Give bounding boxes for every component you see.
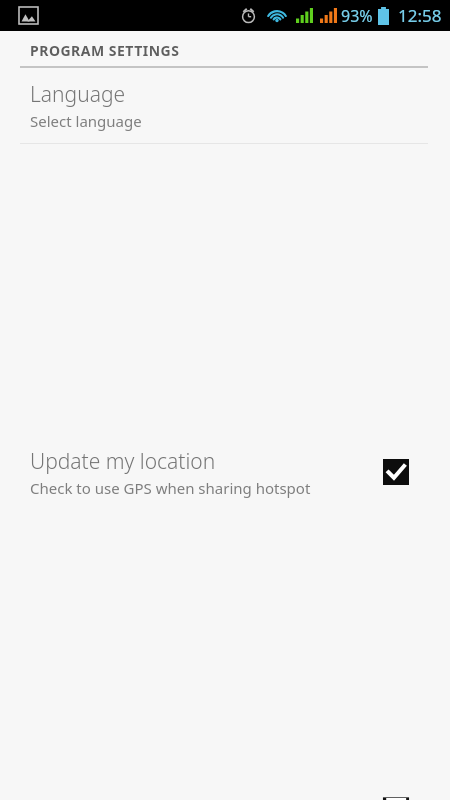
button[interactable]: Toggle Update my location <box>342 144 450 800</box>
staticText: 12:58 <box>398 4 442 27</box>
button[interactable]: Language <box>0 68 450 143</box>
staticText: Language <box>30 80 126 109</box>
staticText: Select language <box>30 111 142 131</box>
staticText: Check to use GPS when sharing hotspot <box>30 478 311 498</box>
other: Image notification <box>19 7 38 24</box>
staticText: PROGRAM SETTINGS <box>30 41 180 60</box>
staticText: 93% <box>341 5 373 27</box>
staticText: Update my location <box>30 447 216 476</box>
button[interactable]: Update my location <box>0 144 450 800</box>
